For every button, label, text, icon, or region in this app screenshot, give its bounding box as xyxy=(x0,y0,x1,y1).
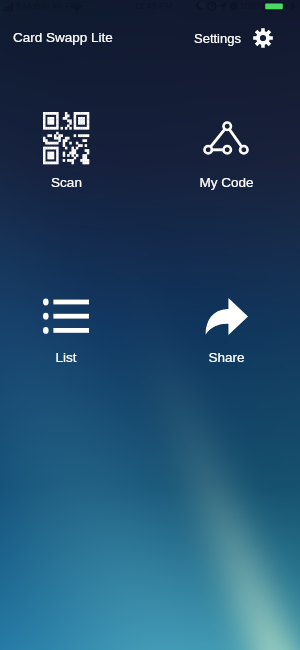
button[interactable]: List xyxy=(20,350,112,370)
button[interactable]: Card Swapp Lite xyxy=(8,28,128,48)
button[interactable]: Scan xyxy=(20,175,112,195)
staticText: My Code xyxy=(199,175,254,190)
staticText: Settings xyxy=(194,31,241,46)
button[interactable]: Share xyxy=(180,282,272,350)
button[interactable]: List xyxy=(20,282,112,350)
button[interactable]: My Code xyxy=(180,104,272,172)
button[interactable]: Scan xyxy=(20,104,112,172)
button[interactable]: Share xyxy=(180,350,272,370)
staticText: List xyxy=(55,350,77,365)
staticText: Card Swapp Lite xyxy=(13,30,113,45)
staticText: Share xyxy=(208,350,245,365)
other: Settings xyxy=(253,28,273,48)
button[interactable]: My Code xyxy=(180,175,272,195)
button[interactable]: Settings xyxy=(190,25,275,51)
staticText: Scan xyxy=(51,175,82,190)
